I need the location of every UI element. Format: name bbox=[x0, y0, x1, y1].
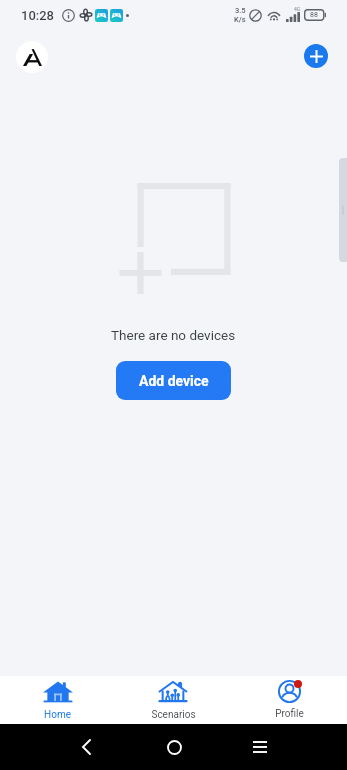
staticText: 10:28 bbox=[21, 8, 54, 23]
staticText: 3.5 bbox=[235, 6, 246, 15]
button[interactable]: Profile bbox=[231, 676, 347, 724]
staticText: Scenarios bbox=[151, 709, 196, 721]
staticText: Home bbox=[44, 709, 71, 721]
staticText: Add device bbox=[139, 373, 209, 389]
button[interactable]: Home bbox=[151, 724, 197, 770]
staticText: K/s bbox=[234, 15, 246, 24]
staticText: There are no devices bbox=[111, 327, 236, 343]
button[interactable]: Recent apps bbox=[237, 724, 283, 770]
button[interactable]: Add device bbox=[116, 361, 231, 400]
button[interactable]: Scenarios bbox=[115, 676, 231, 724]
staticText: 4G bbox=[294, 6, 301, 12]
button[interactable]: Back bbox=[63, 724, 109, 770]
staticText: 88 bbox=[310, 11, 318, 19]
staticText: Profile bbox=[275, 708, 304, 720]
button[interactable]: Add device bbox=[304, 44, 328, 68]
button[interactable]: Account bbox=[16, 41, 48, 73]
button[interactable]: Home bbox=[0, 676, 115, 724]
